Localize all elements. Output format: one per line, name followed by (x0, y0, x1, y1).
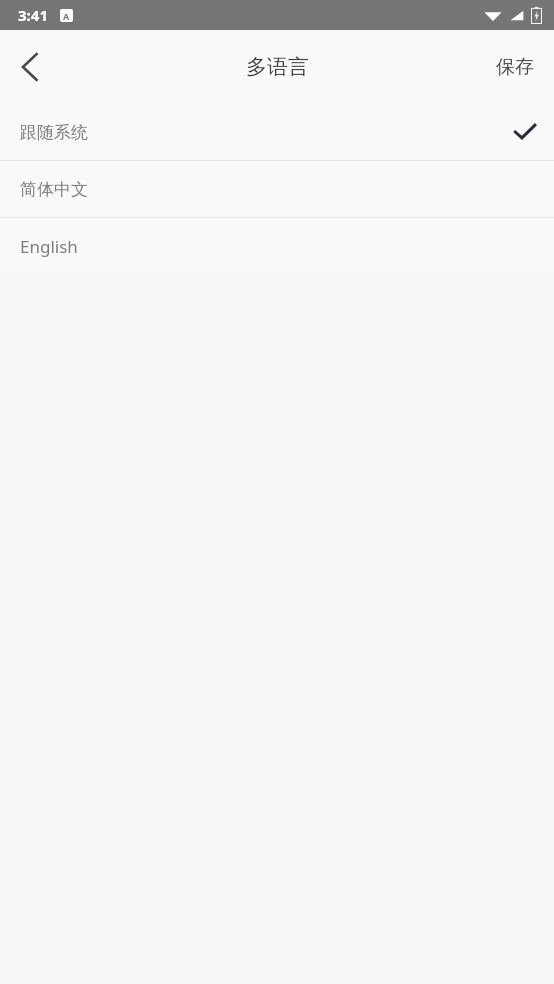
staticText: 简体中文 (20, 179, 88, 200)
button[interactable]: 保存 (476, 30, 554, 104)
staticText: English (20, 235, 78, 258)
button[interactable]: Back (0, 30, 60, 104)
staticText: 多语言 (246, 54, 309, 80)
staticText: 3:41 (18, 5, 48, 25)
staticText: A (63, 10, 70, 22)
staticText: 跟随系统 (20, 122, 88, 143)
button[interactable]: 跟随系统 (0, 104, 554, 160)
button[interactable]: English (0, 218, 554, 274)
button[interactable]: 简体中文 (0, 161, 554, 217)
staticText: 保存 (496, 55, 534, 79)
